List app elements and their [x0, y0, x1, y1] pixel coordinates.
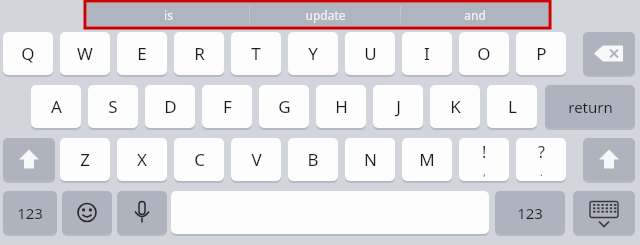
staticText: E [137, 42, 147, 65]
staticText: M [419, 148, 435, 171]
staticText: O [477, 42, 491, 65]
staticText: S [108, 95, 118, 118]
button[interactable]: return [545, 85, 635, 129]
button[interactable]: update [250, 3, 400, 26]
button[interactable]: E [117, 32, 167, 76]
staticText: . [540, 165, 543, 179]
button[interactable]: Emoji [62, 191, 112, 235]
button[interactable]: Shift [583, 138, 635, 182]
button[interactable]: B [288, 138, 338, 182]
staticText: X [137, 148, 147, 171]
button[interactable]: O [459, 32, 509, 76]
button[interactable]: A [31, 85, 81, 129]
staticText: ! [482, 141, 487, 163]
button[interactable]: N [345, 138, 395, 182]
button[interactable]: R [174, 32, 224, 76]
staticText: N [364, 148, 377, 171]
button[interactable]: Y [288, 32, 338, 76]
staticText: F [223, 95, 232, 118]
staticText: ? [538, 141, 545, 163]
button[interactable]: C [174, 138, 224, 182]
staticText: Y [308, 42, 318, 65]
staticText: V [251, 148, 262, 171]
button[interactable]: P [516, 32, 566, 76]
button[interactable]: Backspace [583, 32, 635, 76]
staticText: R [194, 42, 205, 65]
button[interactable]: F [202, 85, 252, 129]
button[interactable]: Z [60, 138, 110, 182]
staticText: J [396, 95, 401, 118]
staticText: W [77, 42, 93, 65]
button[interactable]: S [88, 85, 138, 129]
button[interactable]: K [430, 85, 480, 129]
button[interactable]: T [231, 32, 281, 76]
staticText: 123 [517, 203, 543, 223]
staticText: I [424, 42, 430, 65]
button[interactable]: I [402, 32, 452, 76]
staticText: , [483, 165, 486, 179]
button[interactable]: Voice input [117, 191, 167, 235]
staticText: B [307, 148, 319, 171]
staticText: L [508, 95, 517, 118]
button[interactable]: D [145, 85, 195, 129]
button[interactable]: V [231, 138, 281, 182]
button[interactable]: Hide keyboard [573, 191, 635, 235]
staticText: G [278, 95, 291, 118]
staticText: update [305, 7, 346, 23]
button[interactable]: L [487, 85, 537, 129]
button[interactable]: U [345, 32, 395, 76]
button[interactable]: Space [171, 191, 489, 235]
staticText: C [194, 148, 205, 171]
button[interactable]: X [117, 138, 167, 182]
staticText: D [164, 95, 177, 118]
staticText: is [164, 7, 173, 23]
button[interactable]: G [259, 85, 309, 129]
staticText: T [251, 42, 261, 65]
staticText: A [51, 95, 62, 118]
button[interactable]: J [373, 85, 423, 129]
staticText: and [464, 7, 486, 23]
staticText: Z [80, 148, 90, 171]
button[interactable]: Shift [3, 138, 55, 182]
staticText: return [568, 97, 613, 117]
staticText: 123 [17, 203, 43, 223]
staticText: K [450, 95, 461, 118]
staticText: U [364, 42, 377, 65]
staticText: H [335, 95, 348, 118]
button[interactable]: ? [516, 138, 566, 182]
button[interactable]: W [60, 32, 110, 76]
button[interactable]: M [402, 138, 452, 182]
button[interactable]: H [316, 85, 366, 129]
button[interactable]: 123 [3, 191, 57, 235]
button[interactable]: Q [3, 32, 53, 76]
button[interactable]: and [401, 3, 548, 26]
button[interactable]: is [87, 3, 249, 26]
staticText: Q [21, 42, 35, 65]
staticText: P [536, 42, 547, 65]
button[interactable]: ! [459, 138, 509, 182]
button[interactable]: 123 [495, 191, 565, 235]
